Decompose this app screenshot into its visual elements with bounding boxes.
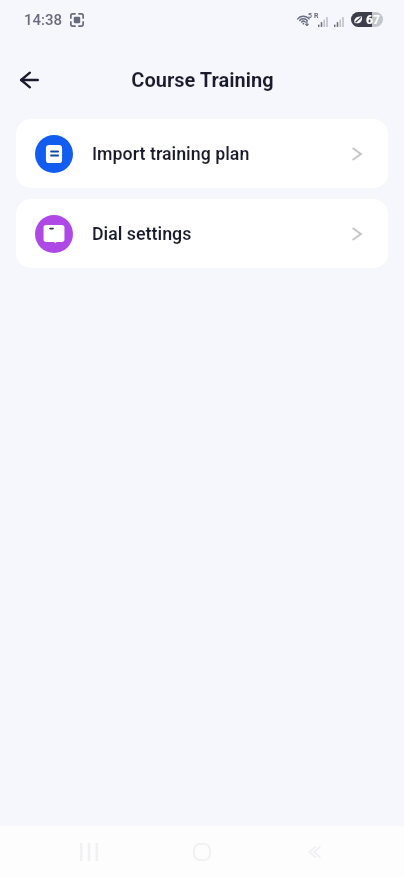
button[interactable]: Import training plan [16, 119, 388, 188]
staticText: Dial settings [92, 223, 192, 244]
staticText: Import training plan [92, 143, 250, 164]
staticText: 14:38 [24, 11, 63, 29]
staticText: Course Training [131, 68, 274, 91]
staticText: 67 [366, 13, 380, 27]
staticText: R [314, 12, 319, 20]
button[interactable]: Back [8, 58, 51, 101]
button[interactable]: Dial settings [16, 199, 388, 268]
staticText: 5 [308, 12, 313, 20]
